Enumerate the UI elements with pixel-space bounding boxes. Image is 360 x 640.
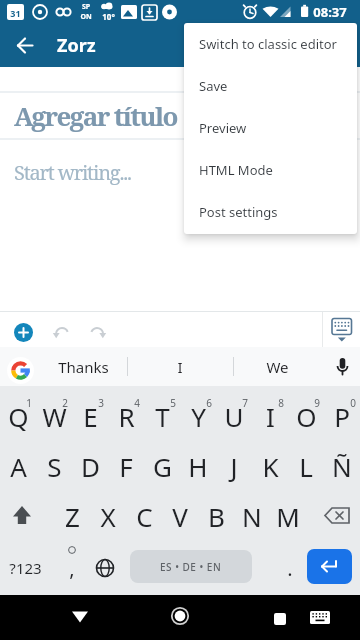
staticText: K: [262, 449, 279, 484]
button[interactable]: Y: [180, 392, 216, 440]
button[interactable]: [334, 358, 351, 382]
staticText: 3: [98, 396, 104, 410]
button[interactable]: [6, 492, 38, 540]
staticText: F: [119, 449, 133, 484]
staticText: Save: [199, 77, 228, 95]
button[interactable]: W: [36, 392, 72, 440]
button[interactable]: K: [252, 442, 288, 490]
staticText: U: [224, 399, 244, 434]
staticText: HTML Mode: [199, 161, 273, 179]
button[interactable]: .: [276, 544, 304, 592]
button[interactable]: B: [198, 492, 234, 540]
staticText: G: [153, 449, 172, 484]
staticText: 08:37: [313, 3, 347, 21]
staticText: 5: [170, 396, 176, 410]
staticText: V: [172, 499, 188, 534]
button[interactable]: N: [234, 492, 270, 540]
button[interactable]: [0, 24, 48, 67]
button[interactable]: G: [144, 442, 180, 490]
staticText: 1: [26, 396, 32, 410]
button[interactable]: [320, 492, 358, 540]
button[interactable]: Start writing...: [14, 152, 214, 192]
button[interactable]: [52, 323, 72, 343]
button[interactable]: HTML Mode: [184, 149, 357, 191]
staticText: 9: [314, 396, 320, 410]
button[interactable]: V: [162, 492, 198, 540]
staticText: R: [118, 399, 135, 434]
button[interactable]: ?123: [4, 544, 46, 592]
staticText: 2: [62, 396, 68, 410]
button[interactable]: ,: [58, 544, 86, 592]
button[interactable]: Save: [184, 65, 357, 107]
button[interactable]: Agregar título: [14, 92, 234, 138]
button[interactable]: D: [72, 442, 108, 490]
button[interactable]: [307, 549, 352, 584]
button[interactable]: A: [0, 442, 36, 490]
staticText: Ñ: [332, 449, 352, 484]
staticText: L: [299, 449, 313, 484]
button[interactable]: ES • DE • EN: [130, 550, 252, 583]
staticText: A: [10, 449, 27, 484]
button[interactable]: S: [36, 442, 72, 490]
button[interactable]: M: [270, 492, 306, 540]
staticText: ,: [69, 555, 75, 582]
staticText: 8: [278, 396, 284, 410]
button[interactable]: E: [72, 392, 108, 440]
button[interactable]: Z: [54, 492, 90, 540]
staticText: ?123: [9, 558, 42, 578]
staticText: ES • DE • EN: [160, 560, 222, 574]
staticText: 6: [206, 396, 212, 410]
staticText: H: [188, 449, 208, 484]
button[interactable]: J: [216, 442, 252, 490]
button[interactable]: [274, 613, 286, 625]
staticText: I: [177, 357, 183, 377]
staticText: E: [83, 399, 98, 434]
button[interactable]: F: [108, 442, 144, 490]
button[interactable]: Q: [0, 392, 36, 440]
staticText: Z: [65, 499, 80, 534]
button[interactable]: Thanks: [40, 347, 127, 386]
staticText: S: [47, 449, 62, 484]
button[interactable]: P: [324, 392, 360, 440]
button[interactable]: H: [180, 442, 216, 490]
staticText: Y: [191, 399, 206, 434]
button[interactable]: Post settings: [184, 191, 357, 233]
button[interactable]: We: [233, 347, 321, 386]
staticText: Preview: [199, 119, 247, 137]
staticText: .: [287, 555, 293, 582]
button[interactable]: [92, 550, 118, 586]
button[interactable]: I: [252, 392, 288, 440]
button[interactable]: [64, 601, 96, 633]
button[interactable]: U: [216, 392, 252, 440]
button[interactable]: O: [288, 392, 324, 440]
staticText: W: [42, 399, 67, 434]
button[interactable]: [7, 357, 34, 384]
button[interactable]: I: [127, 347, 233, 386]
button[interactable]: [14, 323, 33, 342]
button[interactable]: [330, 317, 354, 343]
button[interactable]: Switch to classic editor: [184, 23, 357, 65]
staticText: Thanks: [58, 357, 109, 377]
button[interactable]: X: [90, 492, 126, 540]
button[interactable]: L: [288, 442, 324, 490]
button[interactable]: Ñ: [324, 442, 360, 490]
staticText: M: [276, 499, 300, 534]
staticText: D: [81, 449, 100, 484]
staticText: SP ON: [80, 2, 92, 22]
staticText: T: [155, 399, 170, 434]
staticText: Zorz: [57, 33, 96, 58]
button[interactable]: [164, 599, 196, 631]
button[interactable]: R: [108, 392, 144, 440]
button[interactable]: [87, 323, 107, 343]
button[interactable]: [309, 611, 331, 627]
staticText: Switch to classic editor: [199, 35, 337, 53]
staticText: O: [296, 399, 317, 434]
staticText: Q: [8, 399, 29, 434]
staticText: Post settings: [199, 203, 278, 221]
button[interactable]: C: [126, 492, 162, 540]
button[interactable]: T: [144, 392, 180, 440]
staticText: We: [266, 357, 289, 377]
button[interactable]: Preview: [184, 107, 357, 149]
staticText: Start writing...: [14, 159, 131, 186]
staticText: X: [100, 499, 116, 534]
